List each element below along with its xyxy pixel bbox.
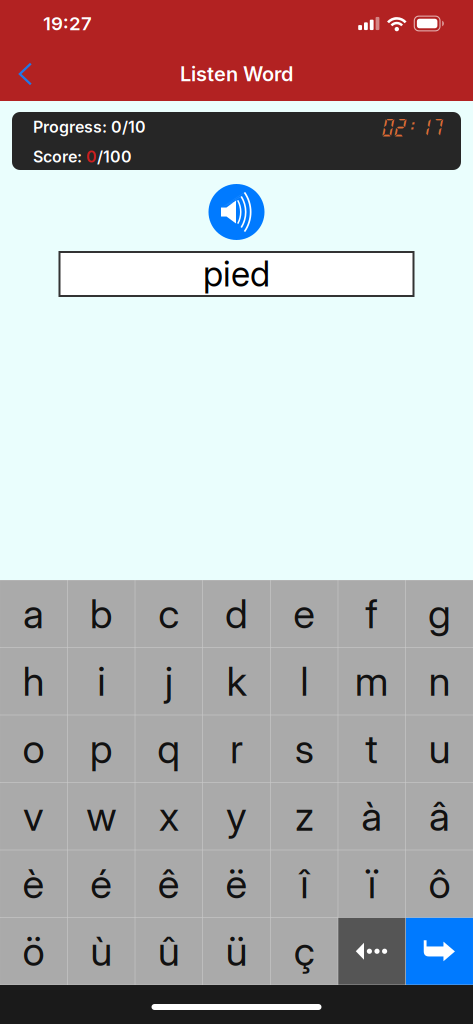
button[interactable]: d bbox=[203, 580, 270, 647]
button[interactable]: r bbox=[203, 715, 270, 782]
button[interactable]: e bbox=[271, 580, 338, 647]
button[interactable]: h bbox=[0, 648, 67, 715]
button[interactable]: k bbox=[203, 648, 270, 715]
staticText: 02:17 bbox=[380, 116, 443, 138]
staticText: Listen Word bbox=[180, 62, 293, 86]
staticText: m bbox=[355, 657, 389, 705]
button[interactable]: é bbox=[68, 850, 135, 917]
button[interactable]: ü bbox=[203, 918, 270, 985]
staticText: l bbox=[300, 657, 308, 705]
button[interactable]: ê bbox=[135, 850, 202, 917]
staticText: a bbox=[23, 590, 44, 638]
button[interactable]: Back bbox=[0, 50, 46, 98]
staticText: f bbox=[365, 590, 378, 638]
button[interactable]: ç bbox=[271, 918, 338, 985]
button[interactable]: z bbox=[271, 783, 338, 850]
button[interactable]: i bbox=[68, 648, 135, 715]
button[interactable]: Play word bbox=[208, 184, 264, 240]
staticText: û bbox=[158, 927, 180, 975]
staticText: î bbox=[300, 860, 308, 908]
staticText: i bbox=[97, 657, 105, 705]
staticText: s bbox=[295, 725, 314, 773]
staticText: v bbox=[23, 792, 44, 840]
staticText: 19:27 bbox=[43, 12, 92, 35]
staticText: p bbox=[90, 725, 113, 773]
staticText: ô bbox=[428, 860, 450, 908]
button[interactable]: y bbox=[203, 783, 270, 850]
button[interactable]: ö bbox=[0, 918, 67, 985]
staticText: â bbox=[429, 792, 450, 840]
button[interactable]: s bbox=[271, 715, 338, 782]
staticText: ç bbox=[294, 927, 315, 975]
button[interactable]: w bbox=[68, 783, 135, 850]
staticText: e bbox=[293, 590, 315, 638]
staticText: ü bbox=[225, 927, 247, 975]
staticText: h bbox=[22, 657, 44, 705]
staticText: Score: bbox=[33, 147, 86, 166]
button[interactable]: g bbox=[406, 580, 473, 647]
staticText: ù bbox=[90, 927, 112, 975]
staticText: c bbox=[158, 590, 179, 638]
staticText: o bbox=[22, 725, 44, 773]
button[interactable]: î bbox=[271, 850, 338, 917]
button[interactable]: ô bbox=[406, 850, 473, 917]
staticText: x bbox=[159, 792, 179, 840]
staticText: à bbox=[361, 792, 382, 840]
staticText: /100 bbox=[97, 147, 132, 166]
staticText: r bbox=[230, 725, 243, 773]
button[interactable]: Delete bbox=[338, 918, 405, 985]
button[interactable]: n bbox=[406, 648, 473, 715]
staticText: q bbox=[157, 725, 180, 773]
button[interactable]: â bbox=[406, 783, 473, 850]
staticText: z bbox=[295, 792, 314, 840]
staticText: k bbox=[226, 657, 246, 705]
staticText: w bbox=[86, 792, 116, 840]
staticText: ë bbox=[225, 860, 247, 908]
button[interactable]: o bbox=[0, 715, 67, 782]
staticText: j bbox=[165, 657, 173, 705]
staticText: Progress: 0/10 bbox=[33, 117, 146, 136]
staticText: ö bbox=[22, 927, 44, 975]
button[interactable]: t bbox=[338, 715, 405, 782]
staticText: ê bbox=[158, 860, 180, 908]
button[interactable]: à bbox=[338, 783, 405, 850]
button[interactable]: a bbox=[0, 580, 67, 647]
button[interactable]: b bbox=[68, 580, 135, 647]
staticText: n bbox=[428, 657, 450, 705]
button[interactable]: u bbox=[406, 715, 473, 782]
staticText: b bbox=[90, 590, 113, 638]
button[interactable]: l bbox=[271, 648, 338, 715]
staticText: t bbox=[365, 725, 378, 773]
staticText: u bbox=[428, 725, 450, 773]
button[interactable]: ù bbox=[68, 918, 135, 985]
staticText: è bbox=[22, 860, 44, 908]
button[interactable]: m bbox=[338, 648, 405, 715]
button[interactable]: f bbox=[338, 580, 405, 647]
staticText: g bbox=[428, 590, 451, 638]
button[interactable]: p bbox=[68, 715, 135, 782]
button[interactable]: v bbox=[0, 783, 67, 850]
button[interactable]: q bbox=[135, 715, 202, 782]
button[interactable]: j bbox=[135, 648, 202, 715]
button[interactable]: è bbox=[0, 850, 67, 917]
button[interactable]: ë bbox=[203, 850, 270, 917]
button[interactable]: û bbox=[135, 918, 202, 985]
staticText: 0 bbox=[86, 147, 97, 166]
button[interactable]: Submit bbox=[406, 918, 473, 985]
staticText: pied bbox=[203, 253, 270, 295]
staticText: é bbox=[90, 860, 112, 908]
button[interactable]: x bbox=[135, 783, 202, 850]
button[interactable]: ï bbox=[338, 850, 405, 917]
button[interactable]: c bbox=[135, 580, 202, 647]
staticText: ï bbox=[368, 860, 376, 908]
staticText: d bbox=[225, 590, 248, 638]
staticText: y bbox=[226, 792, 247, 840]
